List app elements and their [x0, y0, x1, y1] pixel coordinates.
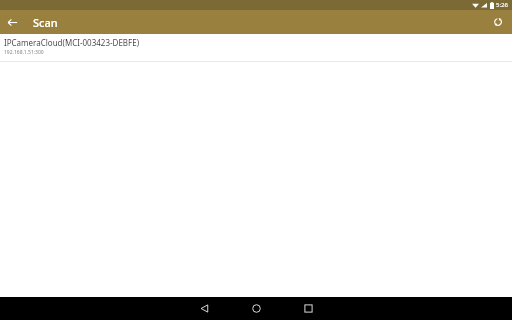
staticText: Scan — [33, 15, 58, 30]
button[interactable]: Recent apps — [282, 297, 334, 320]
staticText: 5:26 — [496, 1, 508, 9]
button[interactable]: Refresh — [486, 10, 510, 34]
button[interactable]: Home — [230, 297, 282, 320]
staticText: IPCameraCloud(MCI-003423-DEBFE) — [4, 37, 140, 48]
button[interactable]: Back — [178, 297, 230, 320]
button[interactable]: Back — [0, 10, 24, 34]
staticText: 192.168.1.51:300 — [4, 49, 44, 56]
button[interactable]: IPCameraCloud(MCI-003423-DEBFE) — [0, 34, 512, 61]
